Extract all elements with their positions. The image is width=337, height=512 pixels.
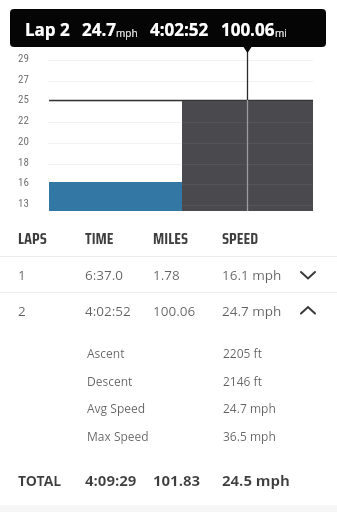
staticText: 24.7 mph <box>222 302 282 320</box>
staticText: TOTAL <box>18 471 62 490</box>
staticText: 27 <box>18 73 29 86</box>
staticText: 18 <box>18 156 29 169</box>
staticText: mi <box>275 26 287 40</box>
staticText: 13 <box>18 197 29 210</box>
staticText: 2205 ft <box>223 345 262 361</box>
button[interactable]: 1 <box>0 257 337 292</box>
staticText: MILES <box>153 226 189 251</box>
staticText: TIME <box>85 226 114 251</box>
staticText: Ascent <box>87 345 125 361</box>
staticText: 6:37.0 <box>85 266 124 284</box>
staticText: 24.7 mph <box>223 400 276 416</box>
staticText: LAPS <box>18 226 47 251</box>
staticText: 1 <box>18 266 26 284</box>
staticText: 100.06 <box>221 18 275 41</box>
staticText: 22 <box>18 114 29 127</box>
staticText: Avg Speed <box>87 400 146 416</box>
other: Expand lap <box>296 263 320 287</box>
staticText: 101.83 <box>153 470 201 490</box>
other: Collapse lap <box>296 299 320 323</box>
staticText: Descent <box>87 373 133 389</box>
staticText: mph <box>116 26 138 40</box>
staticText: 24.7 <box>82 18 116 41</box>
staticText: 2 <box>18 302 26 320</box>
button[interactable]: 2 <box>0 293 337 328</box>
staticText: 36.5 mph <box>223 428 276 444</box>
staticText: 4:02:52 <box>85 302 131 320</box>
staticText: Max Speed <box>87 428 149 444</box>
staticText: 29 <box>18 52 29 65</box>
staticText: 16 <box>18 176 29 189</box>
staticText: 4:02:52 <box>150 18 209 41</box>
button[interactable]: Lap 2 <box>10 9 326 47</box>
staticText: 24.5 mph <box>222 470 290 490</box>
staticText: 100.06 <box>153 302 196 320</box>
staticText: 2146 ft <box>223 373 262 389</box>
staticText: 16.1 mph <box>222 266 282 284</box>
staticText: 25 <box>18 93 29 106</box>
staticText: SPEED <box>222 226 259 251</box>
staticText: 1.78 <box>153 266 180 284</box>
staticText: Lap 2 <box>25 18 70 41</box>
staticText: 4:09:29 <box>85 470 137 490</box>
staticText: 20 <box>18 135 29 148</box>
